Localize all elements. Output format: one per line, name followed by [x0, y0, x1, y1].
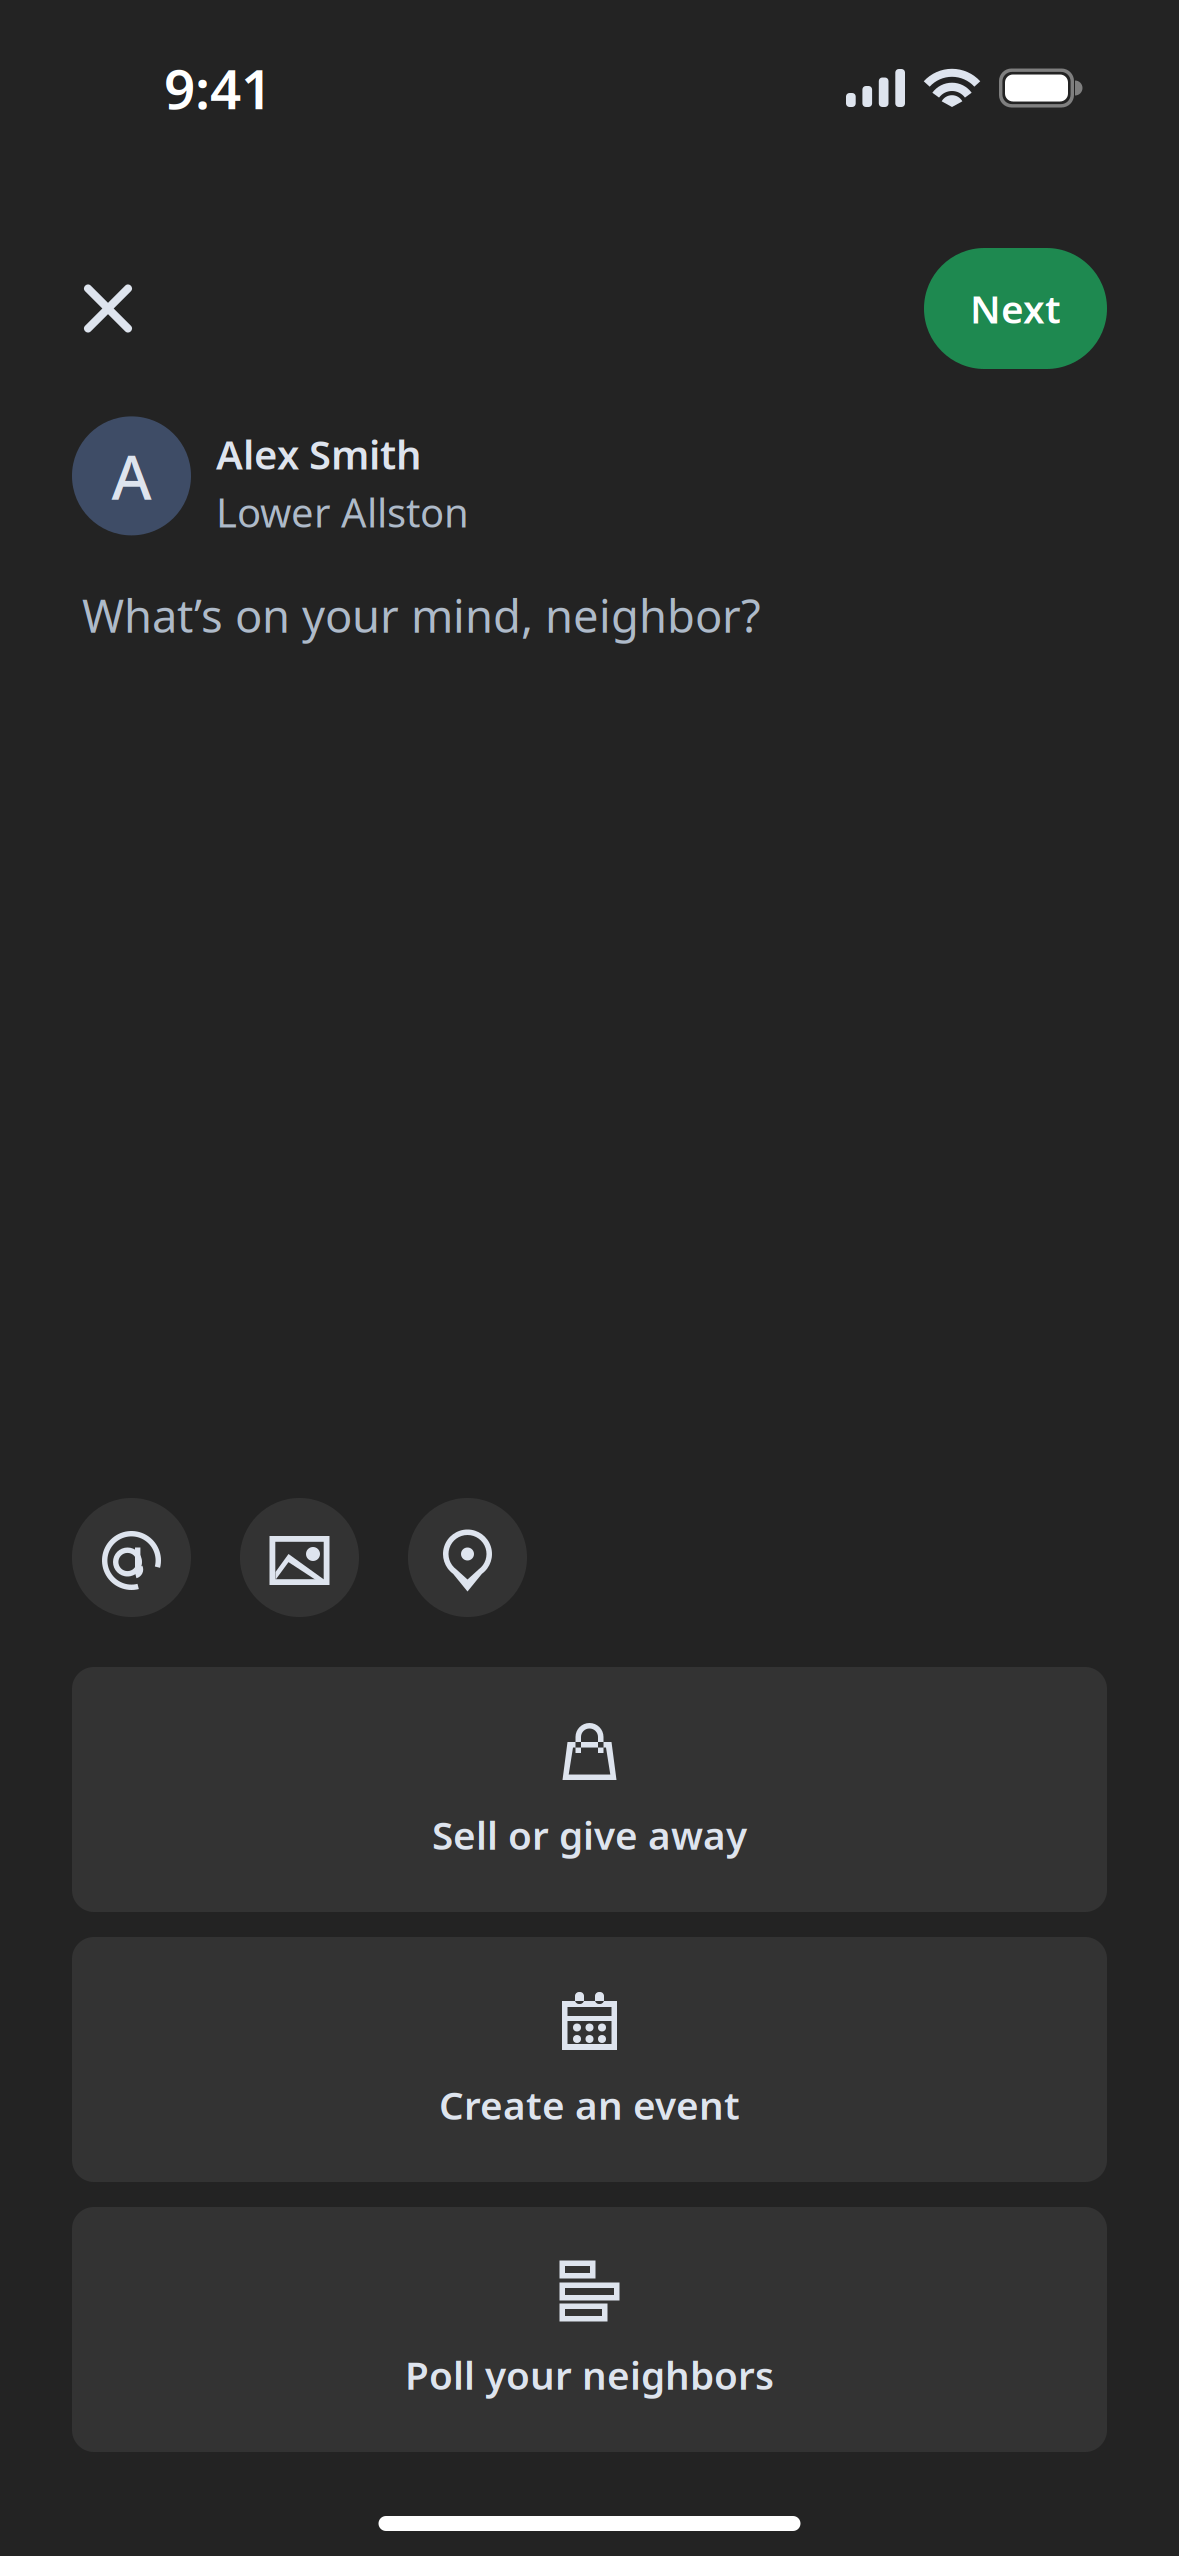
staticText: 9:41: [164, 52, 272, 124]
button[interactable]: Mention a neighbor: [72, 1498, 191, 1617]
staticText: What’s on your mind, neighbor?: [82, 585, 761, 645]
staticText: Create an event: [439, 2079, 740, 2130]
staticText: Alex Smith: [216, 427, 422, 480]
staticText: A: [111, 435, 151, 517]
staticText: Sell or give away: [432, 1809, 747, 1860]
button[interactable]: Add photo: [240, 1498, 359, 1617]
button[interactable]: Create an event: [72, 1937, 1107, 2182]
button[interactable]: Add location: [408, 1498, 527, 1617]
staticText: Next: [970, 283, 1061, 334]
staticText: Lower Allston: [216, 485, 469, 539]
staticText: Poll your neighbors: [405, 2349, 774, 2400]
button[interactable]: Poll your neighbors: [72, 2207, 1107, 2452]
button[interactable]: Close: [72, 248, 144, 369]
button[interactable]: Sell or give away: [72, 1667, 1107, 1912]
button[interactable]: Next: [924, 248, 1107, 369]
button[interactable]: What’s on your mind, neighbor?: [0, 537, 1179, 1498]
